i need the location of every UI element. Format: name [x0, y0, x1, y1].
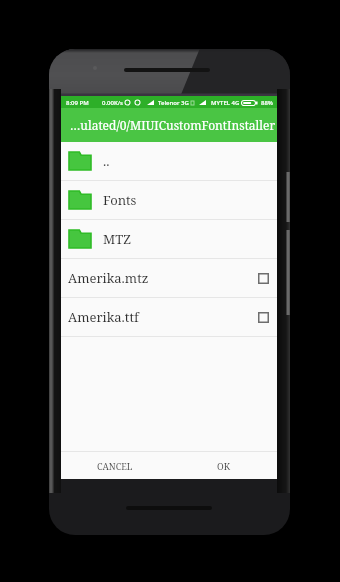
button[interactable]: ..	[61, 142, 277, 180]
staticText: MTZ	[103, 230, 131, 248]
staticText: ..	[103, 152, 110, 170]
staticText: 88%	[261, 99, 273, 107]
staticText: CANCEL	[97, 460, 133, 472]
button[interactable]: MTZ	[61, 220, 277, 258]
staticText: …ulated/0/MIUICustomFontInstaller	[70, 117, 276, 133]
staticText: Amerika.ttf	[68, 308, 139, 326]
button[interactable]: Select Amerika.ttf	[252, 306, 274, 328]
button[interactable]: Amerika.mtz	[61, 259, 277, 297]
button[interactable]: OK	[169, 452, 277, 479]
staticText: OK	[217, 460, 230, 472]
button[interactable]: Amerika.ttf	[61, 298, 277, 336]
staticText: Fonts	[103, 191, 137, 209]
button[interactable]: Fonts	[61, 181, 277, 219]
button[interactable]: Select Amerika.mtz	[252, 267, 274, 289]
staticText: Amerika.mtz	[68, 269, 149, 287]
staticText: 8:09 PM	[66, 99, 89, 107]
staticText: Telenor 3G	[158, 99, 189, 107]
staticText: 0.00K/s	[102, 99, 123, 107]
staticText: MYTEL 4G	[211, 99, 240, 107]
button[interactable]: CANCEL	[61, 452, 169, 479]
